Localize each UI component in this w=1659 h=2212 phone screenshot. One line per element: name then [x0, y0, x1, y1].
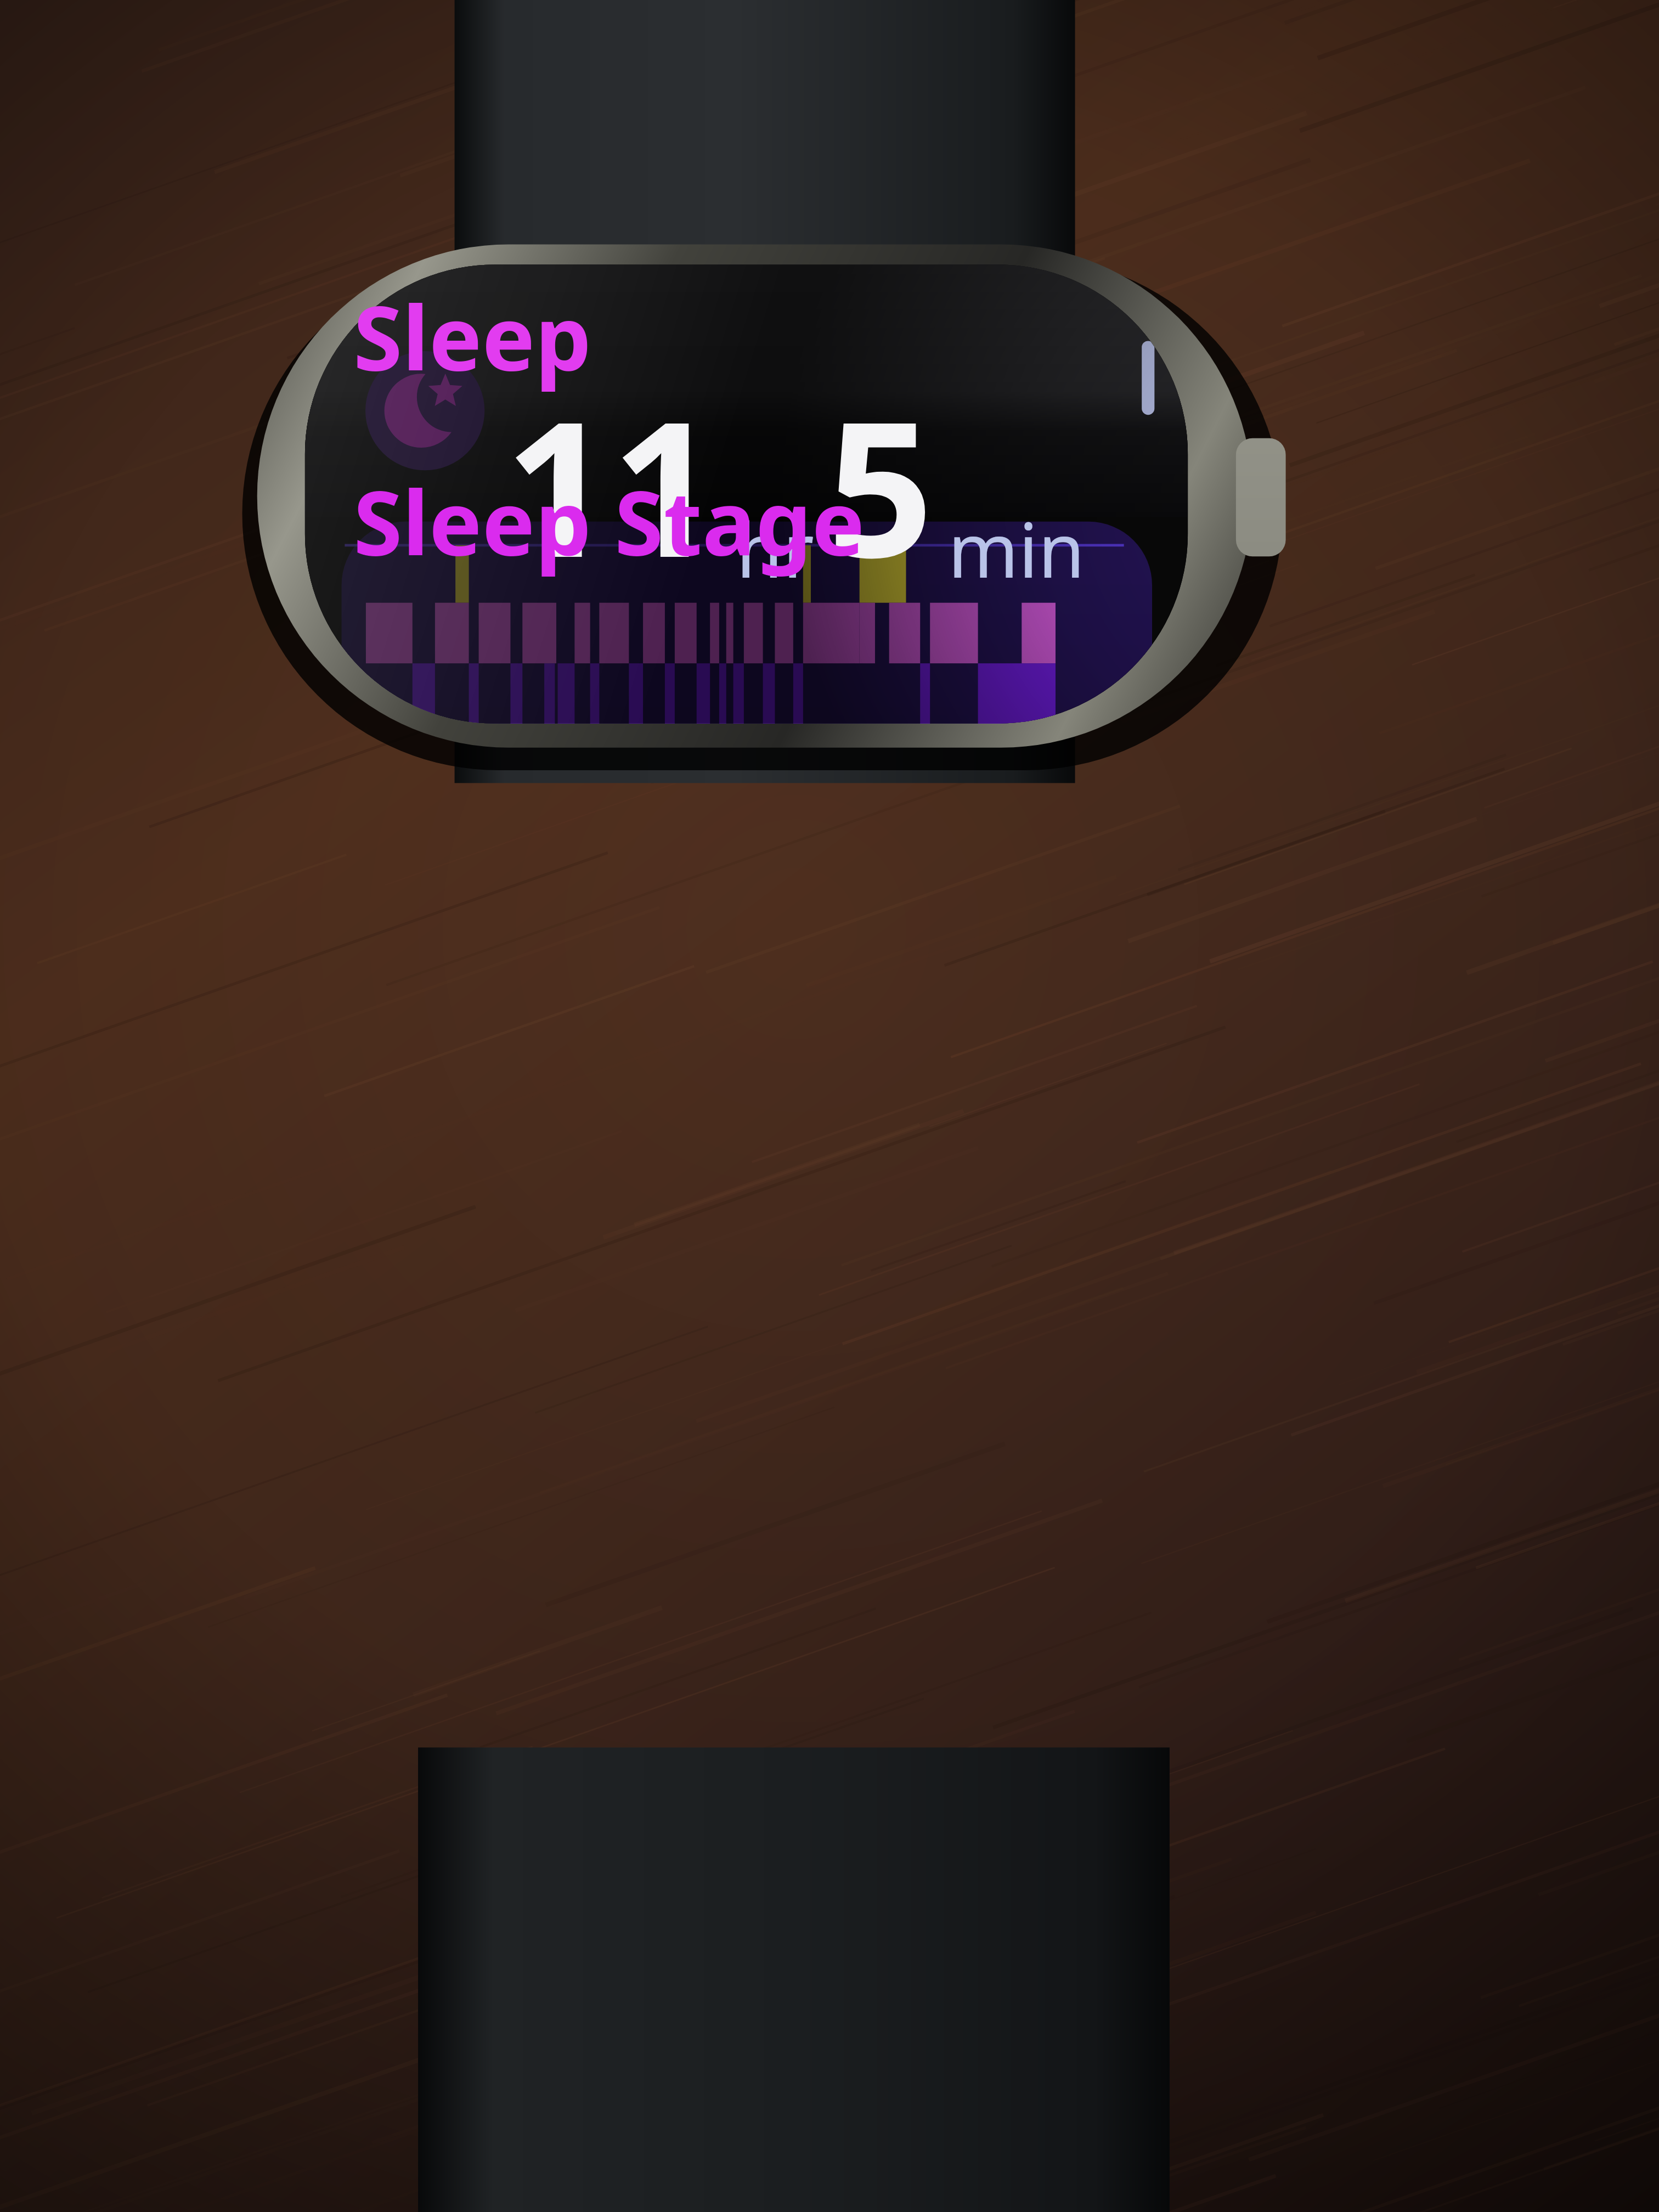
staticText: 5: [827, 357, 934, 612]
staticText: Sleep Stage: [353, 460, 865, 582]
button[interactable]: Sleep Stage: [353, 460, 865, 582]
button[interactable]: 11: [505, 357, 1085, 612]
staticText: Sleep: [353, 275, 591, 397]
staticText: hr: [736, 497, 814, 600]
staticText: 11: [505, 357, 719, 612]
button[interactable]: Sleep: [353, 275, 591, 397]
staticText: min: [948, 497, 1085, 600]
